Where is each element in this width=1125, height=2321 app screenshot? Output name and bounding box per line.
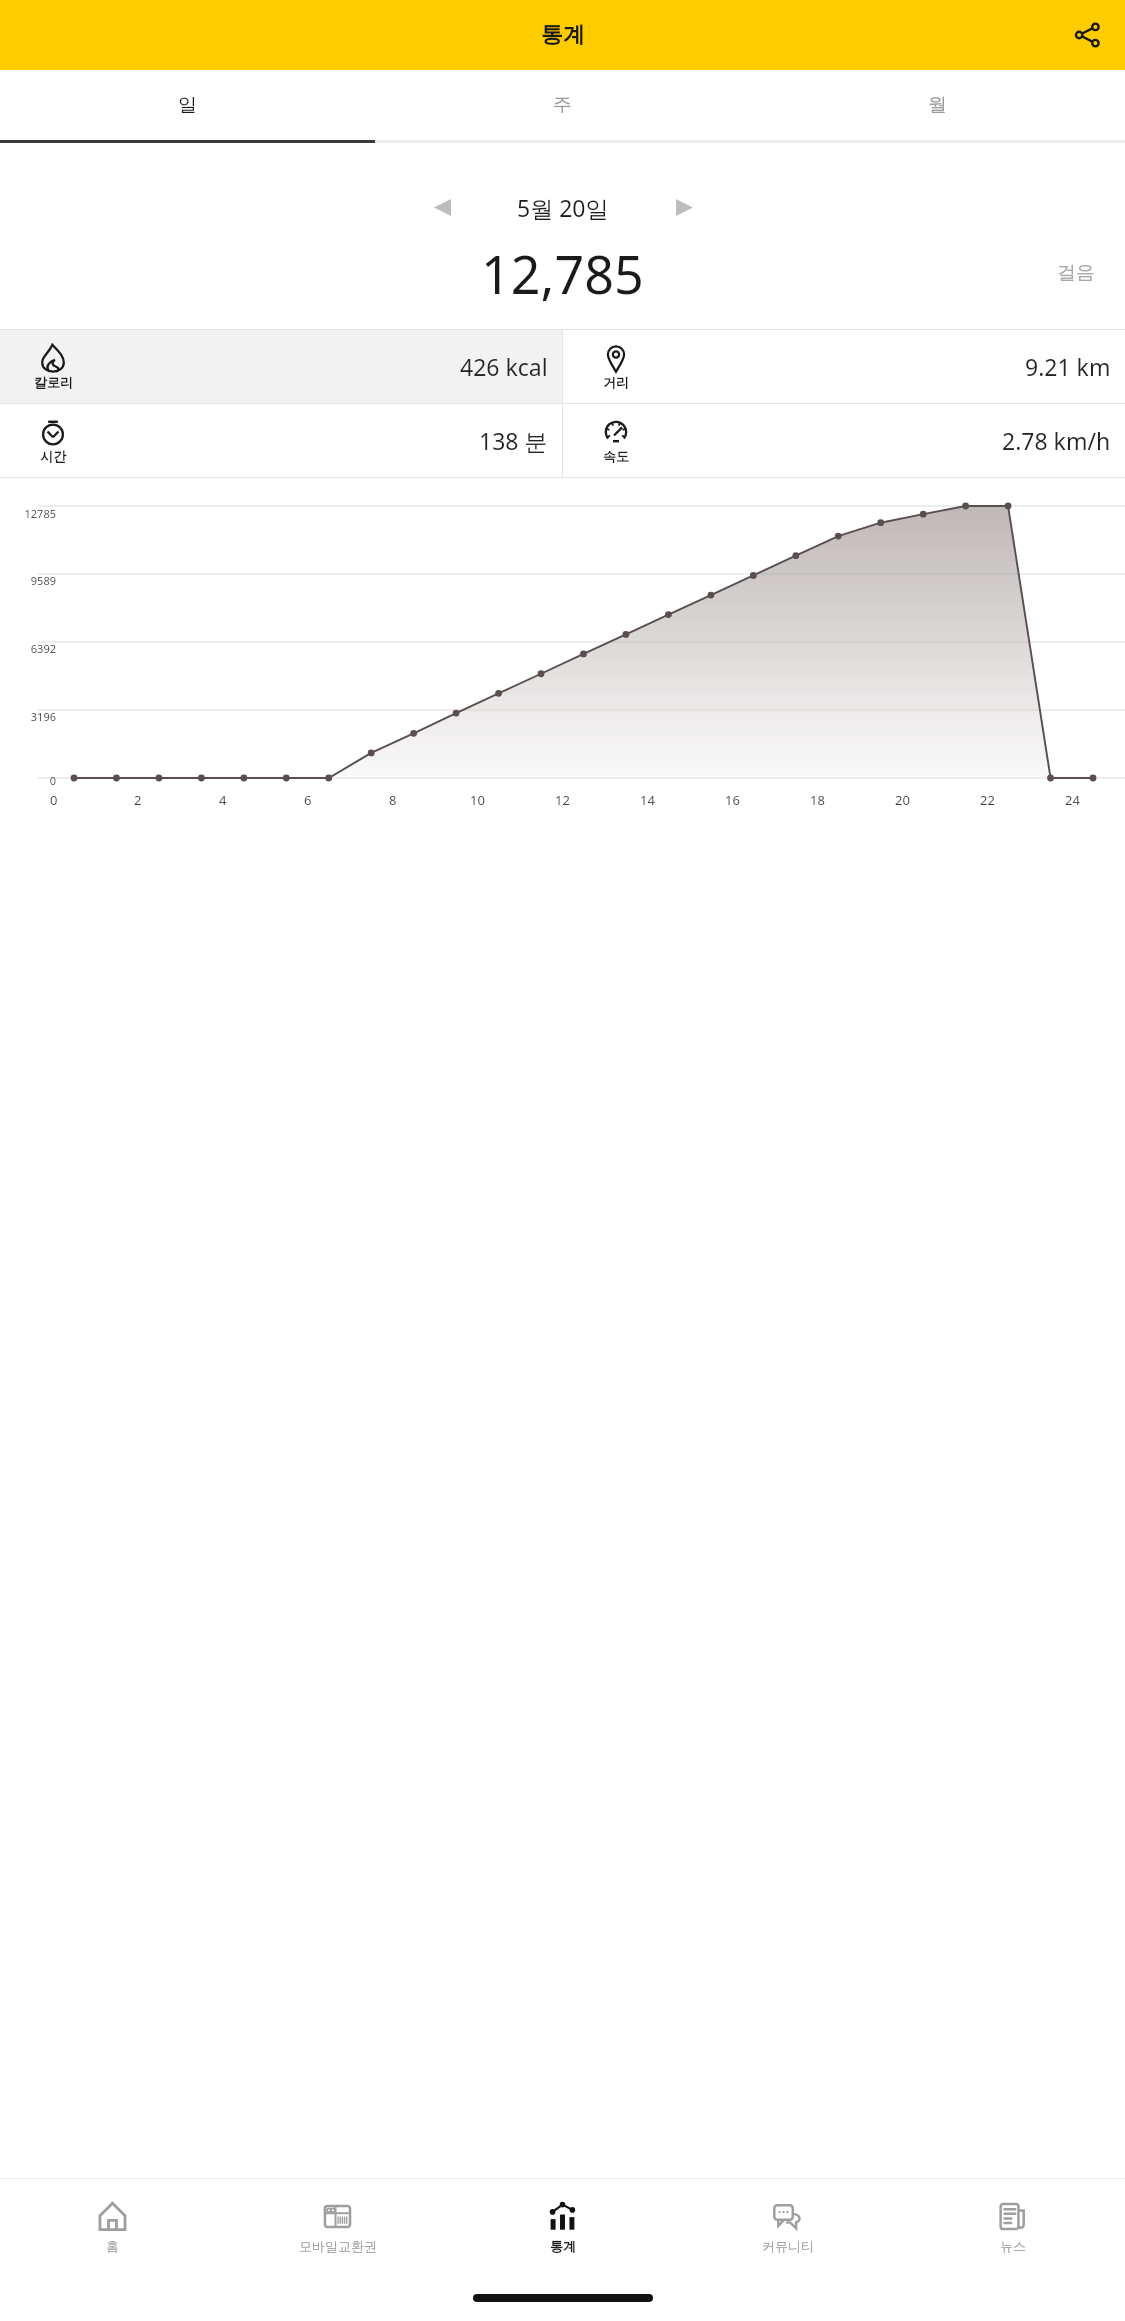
staticText: 9589: [0, 573, 56, 588]
staticText: 12: [555, 791, 570, 809]
button[interactable]: 커뮤니티: [675, 2179, 900, 2275]
staticText: 426 kcal: [460, 351, 548, 382]
button[interactable]: 뉴스: [900, 2179, 1125, 2275]
staticText: 4: [219, 791, 227, 809]
staticText: 속도: [603, 448, 629, 464]
button[interactable]: 통계: [450, 2179, 675, 2275]
staticText: 5월 20일: [517, 192, 609, 223]
staticText: 일: [178, 93, 197, 117]
button[interactable]: Previous day: [416, 183, 468, 231]
staticText: 칼로리: [34, 374, 73, 390]
staticText: 걸음: [1057, 261, 1095, 285]
staticText: 12,785: [481, 238, 644, 309]
staticText: 6392: [0, 641, 56, 656]
button[interactable]: Next day: [658, 183, 710, 231]
staticText: 16: [725, 791, 740, 809]
button[interactable]: 모바일교환권: [225, 2179, 450, 2275]
staticText: 18: [810, 791, 825, 809]
button[interactable]: 속도: [563, 404, 1125, 477]
button[interactable]: 주: [375, 70, 750, 140]
staticText: 통계: [550, 2238, 576, 2254]
button[interactable]: 시간: [0, 404, 562, 477]
staticText: 9.21 km: [1025, 351, 1111, 382]
button[interactable]: Share: [1063, 11, 1111, 59]
staticText: 138 분: [479, 425, 548, 456]
button[interactable]: 일: [0, 70, 375, 140]
staticText: 0: [50, 791, 58, 809]
staticText: 22: [980, 791, 995, 809]
button[interactable]: 월: [750, 70, 1125, 140]
staticText: 3196: [0, 709, 56, 724]
staticText: 커뮤니티: [762, 2238, 814, 2254]
staticText: 2: [134, 791, 142, 809]
staticText: 거리: [603, 374, 629, 390]
staticText: 통계: [541, 21, 585, 49]
staticText: 주: [553, 93, 572, 117]
button[interactable]: 칼로리: [0, 330, 562, 403]
staticText: 2.78 km/h: [1002, 425, 1111, 456]
staticText: 월: [928, 93, 947, 117]
staticText: 뉴스: [1000, 2238, 1026, 2254]
staticText: 8: [389, 791, 397, 809]
staticText: 10: [470, 791, 485, 809]
staticText: 20: [895, 791, 910, 809]
staticText: 24: [1065, 791, 1080, 809]
staticText: 홈: [106, 2238, 119, 2254]
staticText: 6: [304, 791, 312, 809]
staticText: 12785: [0, 506, 56, 521]
staticText: 모바일교환권: [299, 2238, 377, 2254]
button[interactable]: 거리: [563, 330, 1125, 403]
button[interactable]: 홈: [0, 2179, 225, 2275]
staticText: 시간: [40, 448, 66, 464]
staticText: 0: [0, 773, 56, 788]
staticText: 14: [640, 791, 655, 809]
